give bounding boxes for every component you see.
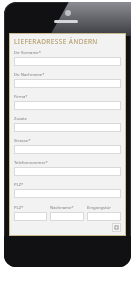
button[interactable]: [14, 79, 121, 88]
button[interactable]: [14, 167, 121, 176]
button[interactable]: [14, 212, 47, 221]
staticText: PLZ*: [14, 205, 24, 211]
button[interactable]: [14, 145, 121, 154]
button[interactable]: [50, 212, 84, 221]
staticText: Ihr Vorname*: [14, 50, 42, 56]
button[interactable]: [87, 212, 121, 221]
staticText: Ihr Nachname*: [14, 72, 45, 78]
staticText: LIEFERADRESSE ÄNDERN: [14, 37, 98, 46]
button[interactable]: [14, 101, 121, 110]
staticText: Firma*: [14, 94, 28, 100]
staticText: Eingangstür: [87, 205, 111, 211]
button[interactable]: Hilfe: [112, 223, 121, 232]
staticText: PLZ*: [14, 182, 24, 188]
button[interactable]: [14, 123, 121, 132]
button[interactable]: [14, 189, 121, 198]
staticText: Zusatz: [14, 116, 27, 122]
staticText: Telefonnummer*: [14, 160, 48, 166]
staticText: Strasse*: [14, 138, 31, 144]
staticText: Nachname*: [50, 205, 74, 211]
button[interactable]: [14, 57, 121, 66]
